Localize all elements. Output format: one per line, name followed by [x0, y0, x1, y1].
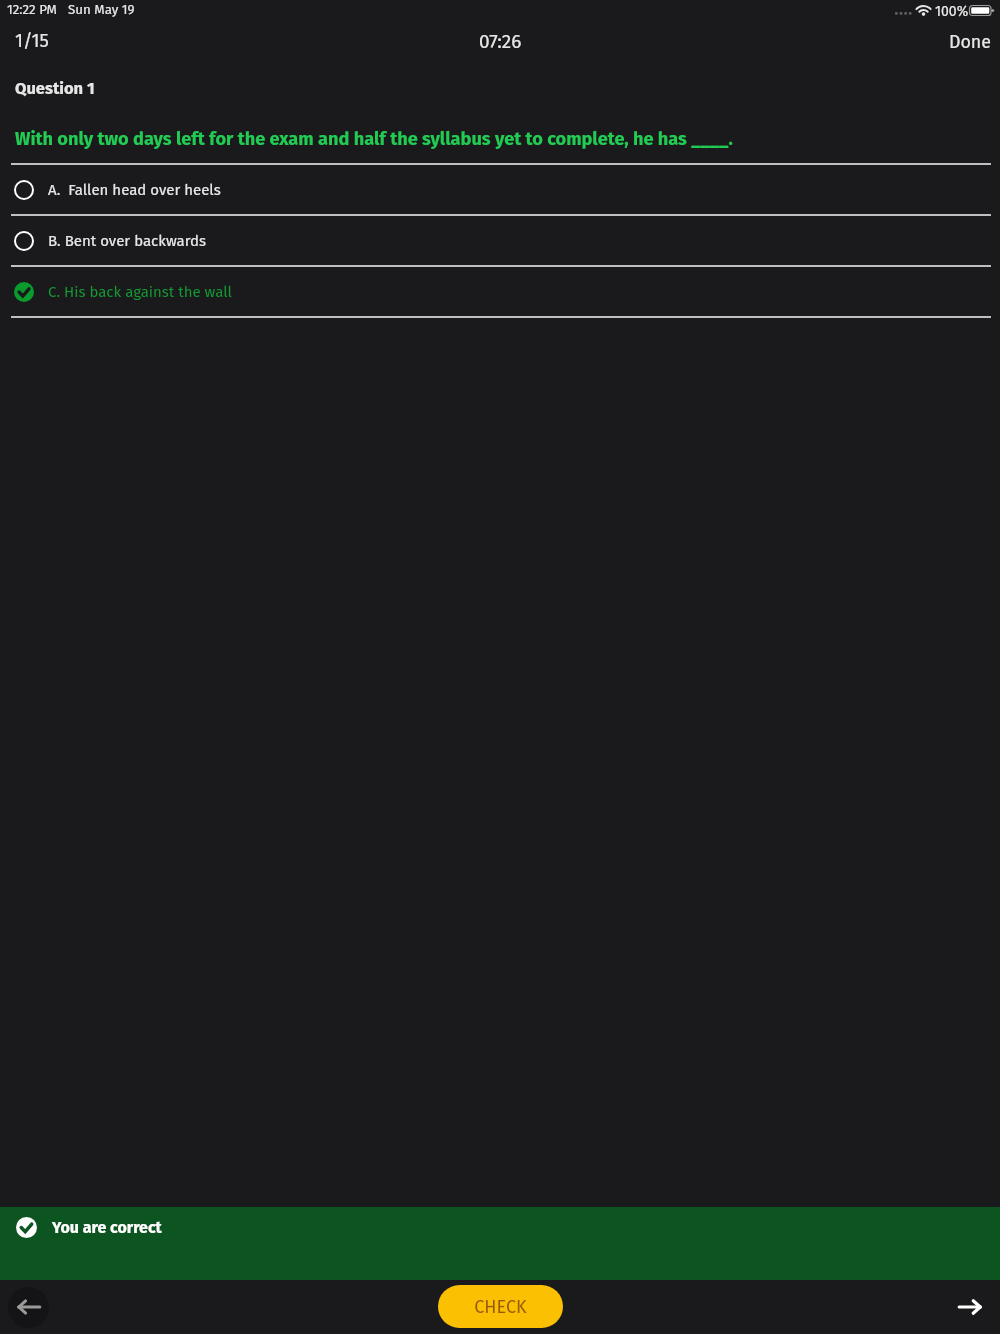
staticText: 100%	[935, 3, 969, 20]
button[interactable]: C. His back against the wall	[0, 267, 1000, 316]
button[interactable]: A. Fallen head over heels	[0, 165, 1000, 214]
staticText: CHECK	[474, 1296, 527, 1318]
button[interactable]: B. Bent over backwards	[0, 216, 1000, 265]
staticText: 1/15	[15, 30, 49, 52]
staticText: Question 1	[15, 79, 95, 99]
staticText: C. His back against the wall	[48, 283, 232, 301]
button[interactable]: CHECK	[438, 1285, 563, 1328]
button[interactable]: Previous question	[8, 1287, 49, 1328]
button[interactable]: Next question	[946, 1283, 994, 1331]
staticText: B. Bent over backwards	[48, 232, 206, 250]
staticText: With only two days left for the exam and…	[15, 128, 733, 150]
staticText: 12:22 PM	[7, 2, 57, 18]
button[interactable]: Done	[935, 25, 1000, 58]
staticText: You are correct	[52, 1218, 162, 1237]
staticText: Done	[949, 31, 991, 52]
staticText: 07:26	[479, 30, 522, 53]
staticText: A. Fallen head over heels	[48, 181, 221, 199]
staticText: Sun May 19	[68, 2, 135, 18]
